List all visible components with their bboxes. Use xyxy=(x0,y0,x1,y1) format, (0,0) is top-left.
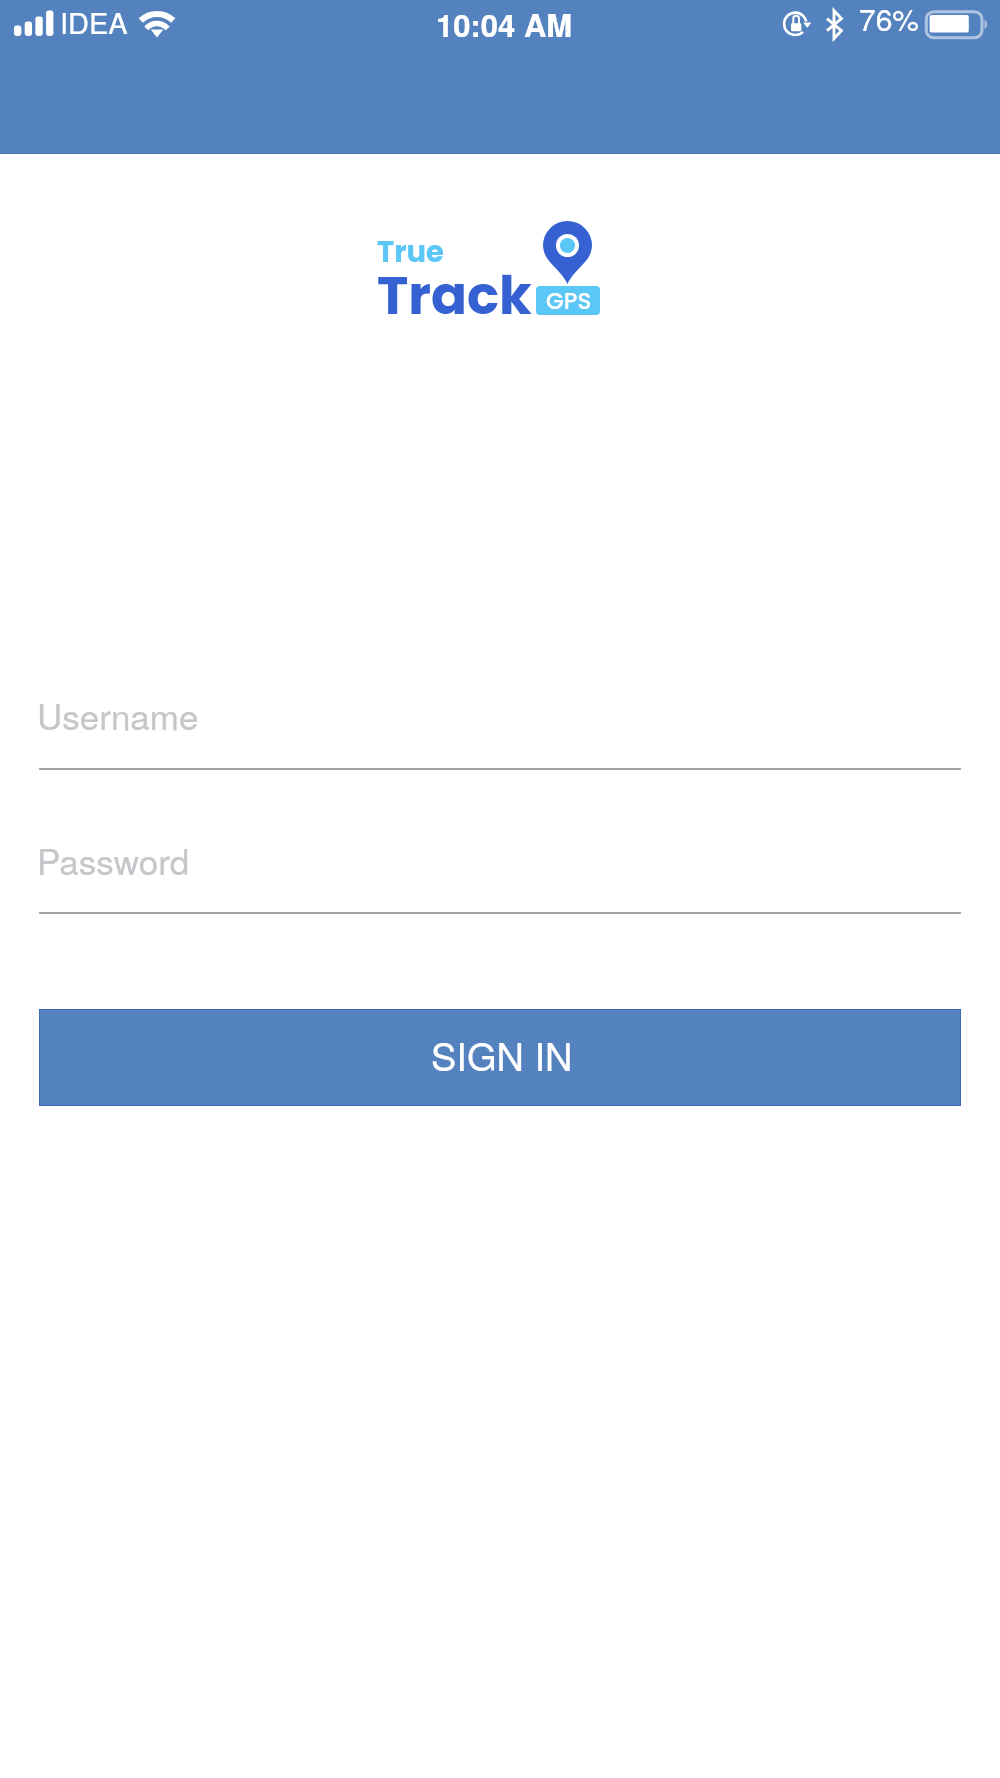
staticText: True xyxy=(377,232,444,273)
staticText: GPS xyxy=(546,286,592,314)
button[interactable]: Password xyxy=(37,830,963,914)
staticText: 10:04 AM xyxy=(436,2,573,46)
other: Battery 76 percent xyxy=(922,8,994,40)
other: Bluetooth xyxy=(824,9,846,42)
button[interactable]: Username xyxy=(37,686,963,770)
button[interactable]: SIGN IN xyxy=(39,1009,961,1106)
staticText: 76% xyxy=(859,0,920,40)
other: Rotation lock xyxy=(782,9,814,41)
staticText: Username xyxy=(37,690,199,740)
staticText: Password xyxy=(37,835,190,885)
staticText: SIGN IN xyxy=(431,1027,573,1081)
other: TrueTrack GPS location pin logo xyxy=(543,221,592,284)
other: Cellular signal xyxy=(14,10,54,37)
staticText: Track xyxy=(377,258,532,332)
staticText: IDEA xyxy=(60,1,128,43)
other: Wi-Fi xyxy=(138,9,176,39)
